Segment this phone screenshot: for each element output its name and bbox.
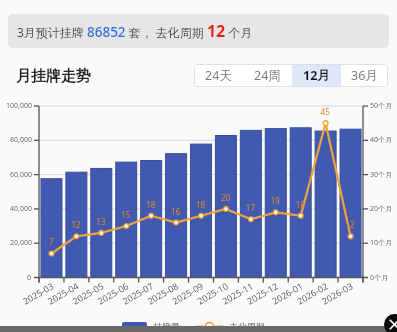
- button[interactable]: 3月预计挂牌 86852 套， 去化周期 12 个月: [8, 14, 389, 48]
- staticText: 3月预计挂牌 86852 套， 去化周期 12 个月: [17, 20, 253, 42]
- staticText: 24天: [205, 67, 232, 84]
- button[interactable]: 36月: [341, 64, 388, 87]
- staticText: 24周: [254, 67, 281, 84]
- staticText: 挂牌量: [153, 321, 180, 332]
- button[interactable]: 24周: [243, 64, 292, 87]
- button[interactable]: Close: [384, 314, 397, 332]
- staticText: 36月: [351, 67, 378, 84]
- staticText: 12月: [303, 67, 330, 84]
- button[interactable]: 24天: [194, 64, 243, 87]
- staticText: 去化周期: [229, 321, 265, 332]
- staticText: 月挂牌走势: [16, 67, 91, 86]
- button[interactable]: 12月: [292, 64, 341, 87]
